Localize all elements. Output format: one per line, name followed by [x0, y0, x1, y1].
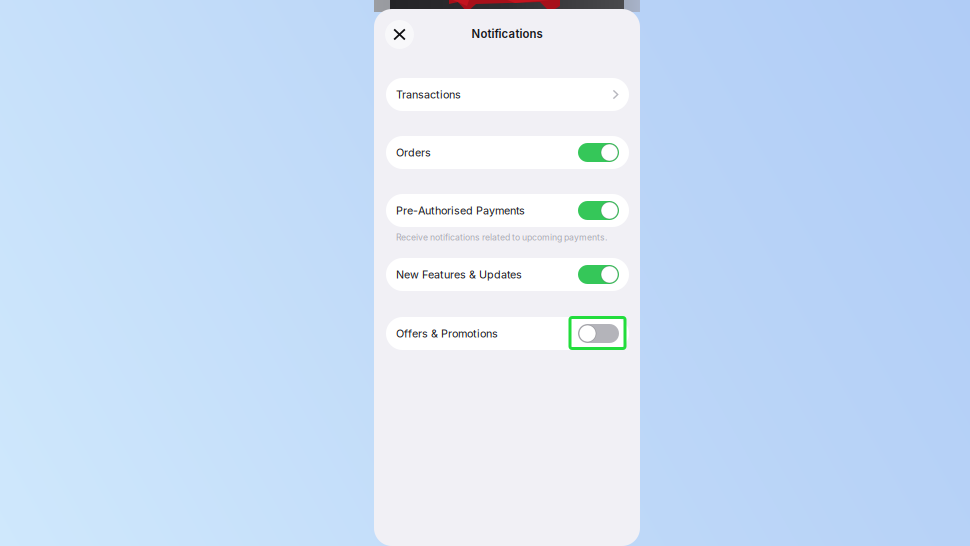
staticText: Offers & Promotions	[396, 327, 498, 340]
button[interactable]: Pre-Authorised Payments	[386, 194, 629, 227]
button[interactable]: New Features & Updates	[386, 258, 629, 291]
staticText: Pre-Authorised Payments	[396, 204, 525, 217]
staticText: New Features & Updates	[396, 268, 522, 281]
staticText: Orders	[396, 146, 431, 159]
staticText: Notifications	[471, 27, 542, 41]
button[interactable]: Close	[385, 20, 414, 49]
staticText: Receive notifications related to upcomin…	[396, 232, 607, 242]
staticText: Transactions	[396, 88, 461, 101]
button[interactable]: Transactions	[386, 78, 629, 111]
button[interactable]: Offers & Promotions	[386, 317, 629, 350]
button[interactable]: Orders	[386, 136, 629, 169]
